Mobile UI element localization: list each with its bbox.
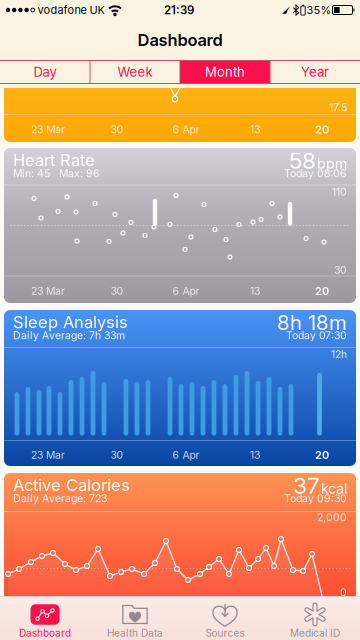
button[interactable]: Dashboard [0, 596, 90, 640]
staticText: 6 Apr [172, 449, 199, 461]
staticText: 8h 18m [277, 310, 347, 335]
staticText: bpm [317, 155, 347, 172]
staticText: 13 [250, 123, 260, 136]
staticText: 23 Mar [31, 449, 65, 461]
staticText: 30 [110, 285, 123, 297]
staticText: Sources [205, 627, 244, 639]
staticText: Year [301, 64, 329, 80]
staticText: 37 [293, 472, 320, 499]
staticText: 12h [331, 348, 347, 361]
button[interactable]: Month [180, 60, 270, 84]
staticText: Health Data [107, 627, 163, 639]
staticText: 20 [315, 448, 329, 462]
staticText: vodafone UK [37, 3, 104, 17]
button[interactable]: Year [270, 60, 360, 84]
button[interactable]: Medical ID [270, 596, 360, 640]
staticText: 20 [315, 284, 329, 298]
button[interactable]: Week [90, 60, 180, 84]
staticText: Dashboard [19, 627, 71, 639]
staticText: 58 [289, 147, 316, 174]
staticText: 13 [250, 449, 260, 461]
staticText: Daily Average: 7h 33m [13, 329, 125, 342]
staticText: Daily Average: 723 [13, 492, 107, 505]
staticText: 6 Apr [172, 285, 199, 297]
staticText: 30 [334, 264, 347, 276]
staticText: Today 08:06 [284, 167, 347, 180]
staticText: Sleep Analysis [13, 312, 128, 332]
button[interactable]: Health Data [90, 596, 180, 640]
staticText: Week [117, 64, 152, 80]
staticText: 35% [306, 3, 331, 17]
staticText: 17.5 [329, 101, 347, 114]
staticText: 6 Apr [172, 123, 199, 136]
staticText: 0 [340, 586, 347, 599]
staticText: Min: 45 Max: 96 [13, 167, 100, 180]
staticText: kcal [321, 480, 347, 497]
staticText: Active Calories [13, 475, 130, 495]
staticText: 13 [250, 285, 260, 297]
staticText: Day [33, 64, 56, 80]
button[interactable]: Day [0, 60, 90, 84]
staticText: Today 07:30 [286, 329, 347, 342]
staticText: Heart Rate [13, 150, 95, 170]
staticText: Medical ID [290, 627, 340, 639]
staticText: Month [205, 64, 245, 80]
staticText: 23 Mar [31, 285, 65, 297]
staticText: 20 [315, 123, 329, 136]
button[interactable]: Sources [180, 596, 270, 640]
staticText: Dashboard [137, 30, 222, 50]
staticText: 21:39 [164, 3, 194, 17]
staticText: 2,000 [317, 511, 347, 524]
staticText: 23 Mar [31, 123, 65, 136]
staticText: 110 [332, 186, 347, 198]
staticText: Today 09:30 [284, 492, 347, 505]
staticText: 30 [110, 123, 123, 136]
staticText: 30 [110, 449, 123, 461]
